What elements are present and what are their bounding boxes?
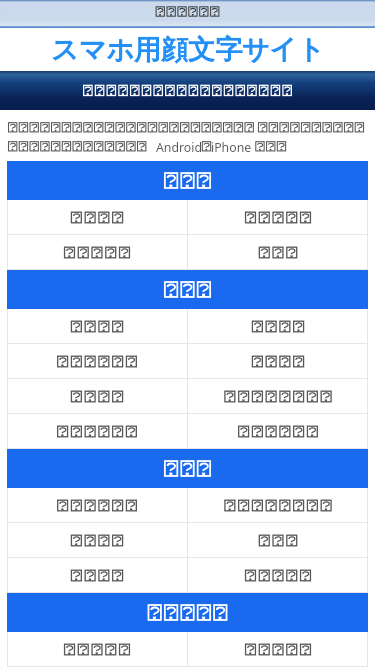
button[interactable]: Category section heading [7,449,368,488]
button[interactable]: Site menu bar [0,0,375,28]
button[interactable]: Emoticon category link [188,488,368,523]
button[interactable]: Emoticon category link [188,235,368,270]
button[interactable]: Emoticon category link [188,523,368,558]
button[interactable]: Emoticon category link [7,200,187,235]
button[interactable]: Emoticon category link [7,235,187,270]
button[interactable]: Emoticon category link [7,523,187,558]
staticText: iPhone [211,139,252,156]
staticText: スマホ用顔文字サイト [51,33,325,67]
staticText: スマホ用顔文字サイト [52,34,326,68]
staticText: スマホ用顔文字サイト [50,32,324,66]
button[interactable]: Emoticon category link [7,344,187,379]
button[interactable]: Category section heading [7,270,368,309]
button[interactable]: Emoticon category link [7,309,187,344]
button[interactable]: Site title [0,28,375,71]
button[interactable]: Emoticon category link [7,414,187,449]
button[interactable]: Emoticon category link [7,488,187,523]
button[interactable]: Emoticon category link [7,558,187,593]
button[interactable]: Category section heading [7,161,368,200]
button[interactable]: Emoticon category link [188,632,368,667]
button[interactable]: Emoticon category link [188,558,368,593]
button[interactable]: Emoticon category link [7,632,187,667]
button[interactable]: Category section heading [7,593,368,632]
button[interactable]: Emoticon category link [188,200,368,235]
staticText: Android [156,139,203,156]
button[interactable]: Emoticon category link [188,309,368,344]
button[interactable]: Emoticon category link [7,379,187,414]
button[interactable]: Emoticon category link [188,379,368,414]
button[interactable]: Emoticon category link [188,414,368,449]
button[interactable]: Emoticon category link [188,344,368,379]
